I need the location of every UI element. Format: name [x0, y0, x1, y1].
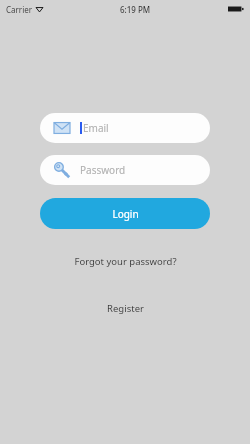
button[interactable]: Login — [40, 198, 210, 229]
staticText: Password — [80, 163, 126, 177]
staticText: Register — [107, 302, 144, 315]
staticText: 6:19 PM — [120, 4, 151, 15]
button[interactable]: Email — [40, 113, 210, 143]
button[interactable]: Password — [40, 155, 210, 185]
staticText: Email — [83, 121, 109, 135]
other: Email — [54, 120, 70, 136]
staticText: Forgot your password? — [74, 255, 177, 268]
button[interactable]: Forgot your password? — [66, 251, 185, 272]
button[interactable]: Register — [99, 298, 152, 319]
other: Password — [54, 162, 70, 178]
staticText: Login — [112, 207, 139, 221]
staticText: Carrier — [6, 4, 33, 15]
